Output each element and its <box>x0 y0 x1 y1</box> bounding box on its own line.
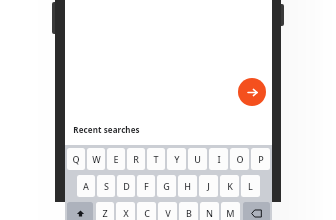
button[interactable]: Shift <box>67 202 93 220</box>
button[interactable]: Z <box>96 202 114 220</box>
button[interactable]: P <box>251 148 270 170</box>
button[interactable]: L <box>241 175 260 197</box>
button[interactable]: N <box>200 202 219 220</box>
staticText: T <box>153 153 159 165</box>
staticText: H <box>184 180 191 192</box>
staticText: M <box>226 207 235 219</box>
staticText: Q <box>72 153 80 165</box>
button[interactable]: W <box>87 148 105 170</box>
button[interactable]: Y <box>167 148 186 170</box>
button[interactable]: C <box>137 202 156 220</box>
button[interactable]: U <box>188 148 207 170</box>
staticText: G <box>163 180 170 192</box>
button[interactable]: Backspace <box>243 202 270 220</box>
staticText: W <box>92 153 101 165</box>
staticText: N <box>206 207 213 219</box>
staticText: Z <box>102 207 108 219</box>
button[interactable]: A <box>77 175 95 197</box>
staticText: U <box>194 153 201 165</box>
staticText: Y <box>174 153 180 165</box>
button[interactable]: Recent searches <box>73 121 280 137</box>
button[interactable]: Search <box>238 78 266 106</box>
button[interactable]: F <box>137 175 155 197</box>
button[interactable]: S <box>97 175 115 197</box>
staticText: D <box>123 180 130 192</box>
button[interactable]: H <box>178 175 197 197</box>
staticText: B <box>186 207 192 219</box>
staticText: K <box>227 180 233 192</box>
staticText: J <box>207 180 210 192</box>
staticText: S <box>104 180 109 192</box>
button[interactable]: T <box>147 148 165 170</box>
button[interactable]: O <box>230 148 249 170</box>
staticText: I <box>217 153 221 165</box>
staticText: E <box>113 153 119 165</box>
staticText: A <box>83 180 89 192</box>
button[interactable]: J <box>199 175 218 197</box>
staticText: V <box>165 207 171 219</box>
staticText: O <box>236 153 244 165</box>
button[interactable]: I <box>209 148 228 170</box>
staticText: R <box>133 153 139 165</box>
staticText: Recent searches <box>73 124 140 135</box>
button[interactable]: M <box>221 202 240 220</box>
staticText: F <box>144 180 149 192</box>
button[interactable]: K <box>220 175 239 197</box>
button[interactable]: B <box>179 202 198 220</box>
button[interactable]: Q <box>67 148 85 170</box>
button[interactable]: E <box>107 148 125 170</box>
staticText: C <box>144 207 150 219</box>
button[interactable]: R <box>127 148 145 170</box>
staticText: P <box>258 153 264 165</box>
button[interactable]: D <box>117 175 135 197</box>
staticText: L <box>248 180 253 192</box>
staticText: X <box>123 207 129 219</box>
button[interactable]: G <box>157 175 176 197</box>
button[interactable]: V <box>158 202 177 220</box>
button[interactable]: X <box>116 202 135 220</box>
